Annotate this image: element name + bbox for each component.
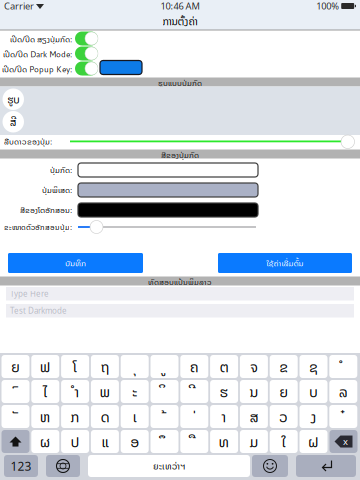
button[interactable]: Type Here <box>6 287 354 300</box>
button[interactable]: ິ <box>150 380 178 403</box>
staticText: ໃ <box>282 431 286 451</box>
staticText: ທ <box>219 431 230 451</box>
button[interactable]: ສ <box>240 405 268 428</box>
staticText: ີ <box>192 381 196 401</box>
button[interactable]: ຟ <box>31 355 59 378</box>
staticText: ຸ <box>133 356 137 376</box>
button[interactable]: ຝ <box>299 430 327 453</box>
staticText: ເປີດ/ປິດ Popup Key: <box>2 63 72 75</box>
button[interactable]: ດ <box>91 405 119 428</box>
button[interactable]: ບັນທຶກ <box>8 253 143 273</box>
button[interactable]: Toggle <box>75 31 98 45</box>
button[interactable]: ູ <box>150 355 178 378</box>
button[interactable]: ຳ <box>61 380 89 403</box>
button[interactable]: ຄ <box>180 355 208 378</box>
button[interactable]: າ <box>210 405 238 428</box>
staticText: ຊ <box>309 356 318 376</box>
staticText: າ <box>222 406 227 426</box>
button[interactable]: ຍ <box>270 380 298 403</box>
staticText: ທົດສອບແປ້ນພິມລາວ <box>148 276 212 285</box>
staticText: Type Here <box>10 288 49 299</box>
button[interactable]: ສີ <box>2 111 24 132</box>
staticText: ຮ <box>220 381 229 401</box>
button[interactable]: ຍ <box>1 355 29 378</box>
button[interactable]: ໃ <box>270 430 298 453</box>
button[interactable]: ຂ <box>270 355 298 378</box>
button[interactable]: Toggle <box>75 46 98 60</box>
button[interactable]: ໄ <box>31 380 59 403</box>
button[interactable]: ຮ <box>210 380 238 403</box>
button[interactable]: ີ <box>180 380 208 403</box>
button[interactable]: ນ <box>240 380 268 403</box>
button[interactable]: ຜ <box>31 430 59 453</box>
button[interactable]: Return <box>296 455 356 477</box>
button[interactable]: ້ <box>150 405 178 428</box>
button[interactable]: Shift <box>1 430 29 453</box>
button[interactable]: ່ <box>180 405 208 428</box>
staticText: ຝ <box>308 431 319 451</box>
button[interactable]: ງ <box>299 405 327 428</box>
button[interactable]: Toggle <box>75 61 98 75</box>
button[interactable]: ຸ <box>121 355 149 378</box>
staticText: ອ <box>130 431 139 451</box>
staticText: ຶ <box>162 431 166 451</box>
button[interactable]: Delete <box>329 430 357 453</box>
staticText: 10:46 AM <box>160 0 199 12</box>
button[interactable]: ສີຂອງໂຕອັກສອນ: <box>78 203 258 217</box>
button[interactable]: ປ <box>61 430 89 453</box>
button[interactable]: ົ <box>1 380 29 403</box>
staticText: ບ <box>309 381 318 401</box>
staticText: ຕ <box>220 356 229 376</box>
staticText: ປ <box>71 431 80 451</box>
button[interactable]: ພ <box>91 380 119 403</box>
staticText: ຟ <box>40 356 51 376</box>
button[interactable]: ຮູບ <box>2 88 24 110</box>
staticText: ຖ <box>100 356 109 376</box>
staticText: ຂະໜາດຕົວອັກສອນປຸ່ມ: <box>4 222 72 232</box>
button[interactable]: ທ <box>210 430 238 453</box>
button[interactable]: ໃຊ້ຄ່າເລີ່ມຕົ້ນ <box>218 253 352 273</box>
staticText: ະ <box>132 381 137 401</box>
staticText: ່ <box>192 406 196 426</box>
button[interactable]: ບ <box>299 380 327 403</box>
button[interactable]: ເ <box>121 405 149 428</box>
button[interactable]: ລ <box>329 380 357 403</box>
button[interactable]: ປຸ່ມພິເສດ: <box>78 183 258 197</box>
button[interactable]: ມ <box>240 430 268 453</box>
button[interactable]: Emoji <box>252 455 288 477</box>
button[interactable]: ອ <box>121 430 149 453</box>
staticText: ດ <box>100 406 109 426</box>
staticText: ຂ <box>279 356 288 376</box>
staticText: ຍ <box>279 381 288 401</box>
button[interactable]: ໍ <box>329 355 357 378</box>
button[interactable]: ກ <box>61 405 89 428</box>
button[interactable]: ຊ <box>299 355 327 378</box>
button[interactable]: ໂ <box>61 355 89 378</box>
button[interactable]: ວ <box>270 405 298 428</box>
button[interactable]: ື <box>180 430 208 453</box>
button[interactable]: ຕ <box>210 355 238 378</box>
staticText: ກ <box>71 406 80 426</box>
staticText: ລ <box>339 381 348 401</box>
staticText: ຜ <box>40 431 51 451</box>
button[interactable]: ປຸ່ມກົດ: <box>78 163 258 177</box>
button[interactable]: ະ <box>121 380 149 403</box>
staticText: ໄ <box>43 381 48 401</box>
button[interactable]: ຫ <box>31 405 59 428</box>
button[interactable]: Next keyboard <box>46 455 80 477</box>
staticText: ຈ <box>250 356 258 376</box>
staticText: ສີຂອງປຸ່ມກົດ <box>161 149 199 158</box>
button[interactable]: ຶ <box>150 430 178 453</box>
button[interactable]: 123 <box>4 455 38 477</box>
button[interactable]: ຈ <box>240 355 268 378</box>
button[interactable]: ໋ <box>329 405 357 428</box>
button[interactable]: ັ <box>1 405 29 428</box>
button[interactable]: ຍະເທວ່າຯ <box>88 455 250 477</box>
button[interactable]: Test Darkmode <box>6 304 354 317</box>
staticText: ການຕັ້ງຄ່າ <box>162 14 197 28</box>
staticText: ສີ <box>10 114 17 129</box>
staticText: 123 <box>10 458 31 474</box>
button[interactable]: ຖ <box>91 355 119 378</box>
button[interactable]: ແ <box>91 430 119 453</box>
staticText: ວ <box>279 406 288 426</box>
